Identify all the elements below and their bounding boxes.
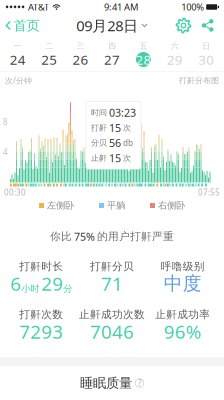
staticText: 止鼾成功率: [155, 308, 210, 321]
staticText: 六: [171, 41, 179, 51]
staticText: 次: [123, 123, 131, 133]
staticText: [39, 283, 41, 296]
staticText: 27: [104, 51, 120, 68]
staticText: 30: [198, 51, 214, 68]
staticText: 4: [3, 146, 8, 157]
staticText: AT&T: [26, 1, 49, 13]
staticText: 03:23: [109, 105, 136, 120]
staticText: 100%: [181, 1, 204, 13]
button[interactable]: 分享: [198, 14, 217, 37]
staticText: 24: [10, 51, 26, 68]
staticText: 29: [167, 51, 183, 68]
staticText: 打鼾分贝: [90, 260, 134, 273]
staticText: 7293: [19, 319, 63, 344]
button[interactable]: 09月28日: [70, 14, 154, 37]
staticText: 一: [14, 41, 22, 51]
staticText: 睡眠质量: [80, 375, 132, 391]
button[interactable]: 一: [2, 39, 33, 69]
button[interactable]: 三: [65, 39, 96, 69]
staticText: 五: [139, 41, 147, 51]
staticText: 止鼾成功次数: [79, 308, 145, 321]
staticText: 26: [73, 51, 89, 68]
staticText: 止鼾: [91, 153, 107, 163]
staticText: 打鼾次数: [19, 308, 63, 321]
button[interactable]: 日: [191, 39, 222, 69]
staticText: 打鼾分布图: [179, 76, 219, 85]
staticText: 时间: [91, 108, 107, 117]
staticText: 96%: [164, 319, 202, 344]
button[interactable]: 二: [33, 39, 65, 69]
staticText: 00:30: [4, 187, 26, 198]
staticText: 71: [101, 271, 123, 296]
staticText: db: [123, 138, 133, 148]
staticText: 75%: [74, 229, 95, 244]
staticText: 29: [41, 271, 63, 296]
staticText: 的用户打鼾严重: [97, 230, 174, 243]
button[interactable]: 设置: [174, 14, 193, 37]
staticText: 9:41 AM: [104, 1, 138, 13]
staticText: 四: [108, 41, 116, 51]
staticText: 8: [3, 116, 8, 127]
staticText: 07:55: [198, 187, 220, 198]
button[interactable]: 四: [96, 39, 128, 69]
staticText: 左侧卧: [47, 200, 74, 211]
staticText: 中度: [164, 272, 202, 295]
button[interactable]: 五: [128, 39, 159, 69]
staticText: 三: [77, 41, 85, 51]
staticText: 打鼾时长: [19, 260, 63, 273]
staticText: 你比: [50, 230, 72, 243]
staticText: 首页: [13, 17, 39, 34]
staticText: 15: [109, 121, 121, 135]
staticText: 平躺: [107, 200, 125, 211]
staticText: 次: [123, 153, 131, 163]
staticText: 二: [45, 41, 53, 51]
staticText: 09月28日: [76, 16, 138, 35]
staticText: 25: [41, 51, 57, 68]
staticText: 呼噜级别: [161, 260, 205, 273]
staticText: 7046: [90, 319, 134, 344]
button[interactable]: 六: [159, 39, 190, 69]
staticText: •••••: [5, 0, 25, 14]
staticText: 次/分钟: [5, 75, 32, 86]
staticText: 6: [10, 271, 21, 296]
staticText: 小时: [21, 283, 39, 294]
staticText: 56: [109, 136, 121, 150]
staticText: 日: [202, 41, 210, 51]
staticText: 28: [135, 51, 151, 68]
staticText: 15: [109, 151, 121, 165]
staticText: 分: [63, 283, 72, 294]
staticText: 分贝: [91, 138, 107, 148]
staticText: ?: [138, 378, 141, 388]
staticText: 右侧卧: [158, 200, 185, 211]
staticText: 打鼾: [91, 123, 107, 133]
button[interactable]: 首页: [0, 14, 45, 37]
